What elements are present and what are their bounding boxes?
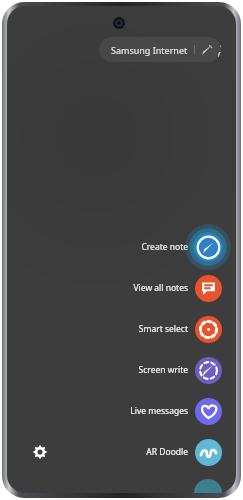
staticText: Live messages (130, 405, 188, 417)
button[interactable]: View all notes (195, 275, 222, 302)
staticText: View all notes (133, 282, 188, 294)
staticText: AR Doodle (146, 446, 188, 458)
staticText: Samsung Internet (111, 44, 188, 56)
staticText: Create note (141, 241, 188, 253)
button[interactable]: Create note (195, 234, 222, 261)
button[interactable]: View all notes (102, 279, 188, 297)
staticText: Smart select (138, 323, 188, 335)
staticText: 100% (218, 37, 221, 62)
button[interactable]: AR Doodle (102, 443, 188, 461)
button[interactable]: Smart select (102, 320, 188, 338)
button[interactable]: Smart select (195, 316, 222, 343)
button[interactable]: AR Doodle (195, 439, 222, 466)
button[interactable]: Screen write (195, 357, 222, 384)
staticText: Screen write (138, 364, 188, 376)
button[interactable]: Settings (29, 441, 51, 463)
button[interactable]: Samsung Internet (99, 37, 221, 62)
button[interactable]: Screen write (102, 361, 188, 379)
button[interactable]: Create note (102, 238, 188, 256)
button[interactable]: Live messages (195, 398, 222, 425)
button[interactable]: Live messages (102, 402, 188, 420)
